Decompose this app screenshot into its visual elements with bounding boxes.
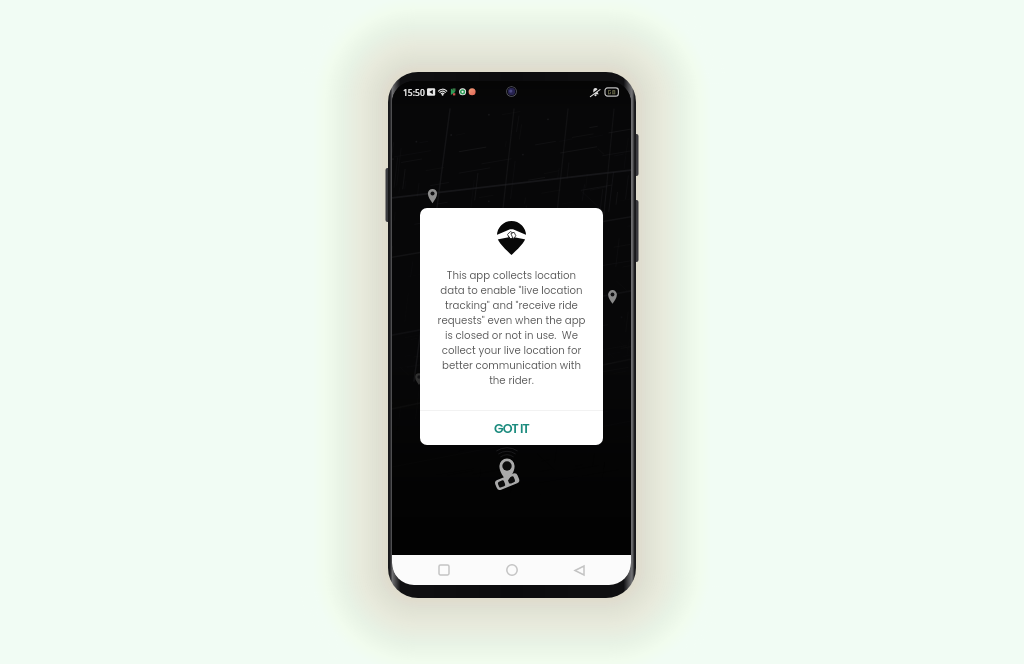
button[interactable]: Home [497, 555, 527, 585]
staticText: GOT IT [494, 420, 529, 437]
staticText: 15:50 [403, 87, 425, 99]
button[interactable]: GOT IT [420, 411, 603, 445]
button[interactable]: Back [564, 555, 594, 585]
staticText: This app collects location data to enabl… [434, 268, 589, 387]
button[interactable]: Recents [429, 555, 459, 585]
